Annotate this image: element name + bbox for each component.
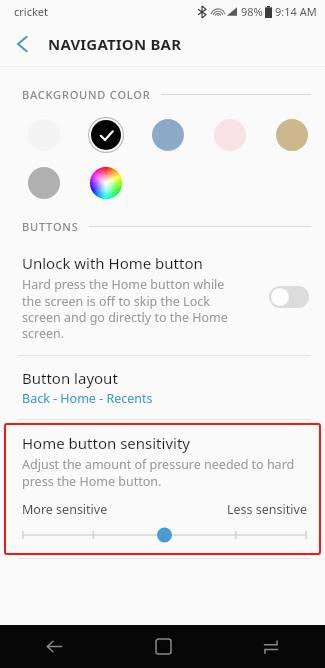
- button[interactable]: Button layout: [0, 356, 325, 419]
- staticText: Back - Home - Recents: [22, 390, 153, 407]
- staticText: NAVIGATION BAR: [48, 34, 182, 54]
- button[interactable]: Back: [0, 625, 109, 668]
- staticText: Adjust the amount of pressure needed to …: [22, 456, 307, 489]
- button[interactable]: Color option: [212, 117, 248, 153]
- staticText: More sensitive: [22, 501, 108, 518]
- staticText: 9:14 AM: [275, 4, 317, 19]
- button[interactable]: Home button sensitivity: [4, 423, 321, 555]
- staticText: Hard press the Home button while the scr…: [22, 276, 242, 341]
- staticText: cricket: [14, 4, 48, 19]
- button[interactable]: Recents: [217, 625, 325, 668]
- button[interactable]: Unlock with Home button toggle: [269, 286, 309, 308]
- button[interactable]: Color option: [274, 117, 310, 153]
- button[interactable]: Color option: [150, 117, 186, 153]
- button[interactable]: Color option: [88, 117, 124, 153]
- staticText: 98%: [241, 4, 263, 19]
- staticText: BUTTONS: [22, 219, 79, 234]
- button[interactable]: Back: [0, 22, 44, 66]
- staticText: Button layout: [22, 368, 118, 388]
- staticText: Less sensitive: [227, 501, 307, 518]
- staticText: Unlock with Home button: [22, 253, 203, 273]
- staticText: Home button sensitivity: [22, 433, 190, 453]
- button[interactable]: Home button sensitivity slider: [22, 525, 307, 545]
- button[interactable]: Unlock with Home button: [0, 241, 325, 355]
- staticText: BACKGROUND COLOR: [22, 87, 151, 102]
- button[interactable]: Color option: [26, 165, 62, 201]
- button[interactable]: Home: [109, 625, 217, 668]
- button[interactable]: Custom color: [88, 165, 124, 201]
